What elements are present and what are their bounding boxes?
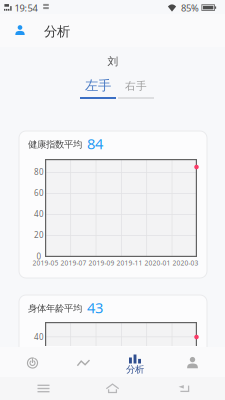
staticText: 85% [181, 2, 199, 14]
staticText: 0 [36, 251, 41, 262]
staticText: 2019-05 [32, 259, 58, 267]
button[interactable]: Profile [171, 347, 213, 377]
button[interactable]: 右手 [118, 76, 154, 102]
button[interactable]: Profile [6, 17, 34, 43]
staticText: 2019-09 [88, 259, 114, 267]
button[interactable]: Measure [11, 348, 53, 378]
staticText: 右手 [125, 79, 147, 92]
staticText: 2019-07 [60, 259, 86, 267]
button[interactable]: Home [87, 377, 137, 400]
staticText: 分析 [44, 23, 70, 40]
staticText: 2020-01 [144, 259, 170, 267]
staticText: 20 [34, 230, 44, 240]
button[interactable]: Recents [18, 377, 68, 400]
staticText: 健康指数平均 [28, 139, 82, 150]
staticText: 分析 [126, 364, 144, 375]
button[interactable]: 分析 [114, 347, 156, 377]
staticText: 60 [34, 188, 44, 198]
staticText: 40 [34, 332, 44, 342]
staticText: 身体年龄平均 [28, 303, 82, 314]
staticText: 左手 [85, 77, 111, 94]
button[interactable]: 左手 [80, 76, 116, 102]
staticText: 刘 [107, 55, 118, 68]
staticText: 84 [87, 134, 103, 153]
staticText: 2019-11 [116, 259, 142, 267]
staticText: 43 [87, 298, 103, 317]
staticText: 2020-03 [172, 259, 198, 267]
button[interactable]: Trends [62, 348, 104, 378]
staticText: 19:54 [14, 2, 37, 14]
staticText: 40 [34, 209, 44, 219]
staticText: 80 [34, 167, 44, 177]
button[interactable]: Back [159, 377, 209, 400]
